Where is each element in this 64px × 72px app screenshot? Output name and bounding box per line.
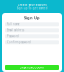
staticText: CREATE ACCOUNT [19, 66, 44, 69]
staticText: Full name [7, 22, 20, 26]
staticText: Sign Up [24, 15, 40, 20]
staticText: Password [7, 34, 19, 38]
staticText: Email address [7, 28, 24, 32]
staticText: Confirm password [7, 40, 31, 44]
staticText: Sign up to get started [16, 6, 47, 10]
staticText: Create your account [17, 3, 46, 6]
button[interactable]: CREATE ACCOUNT [5, 65, 59, 70]
